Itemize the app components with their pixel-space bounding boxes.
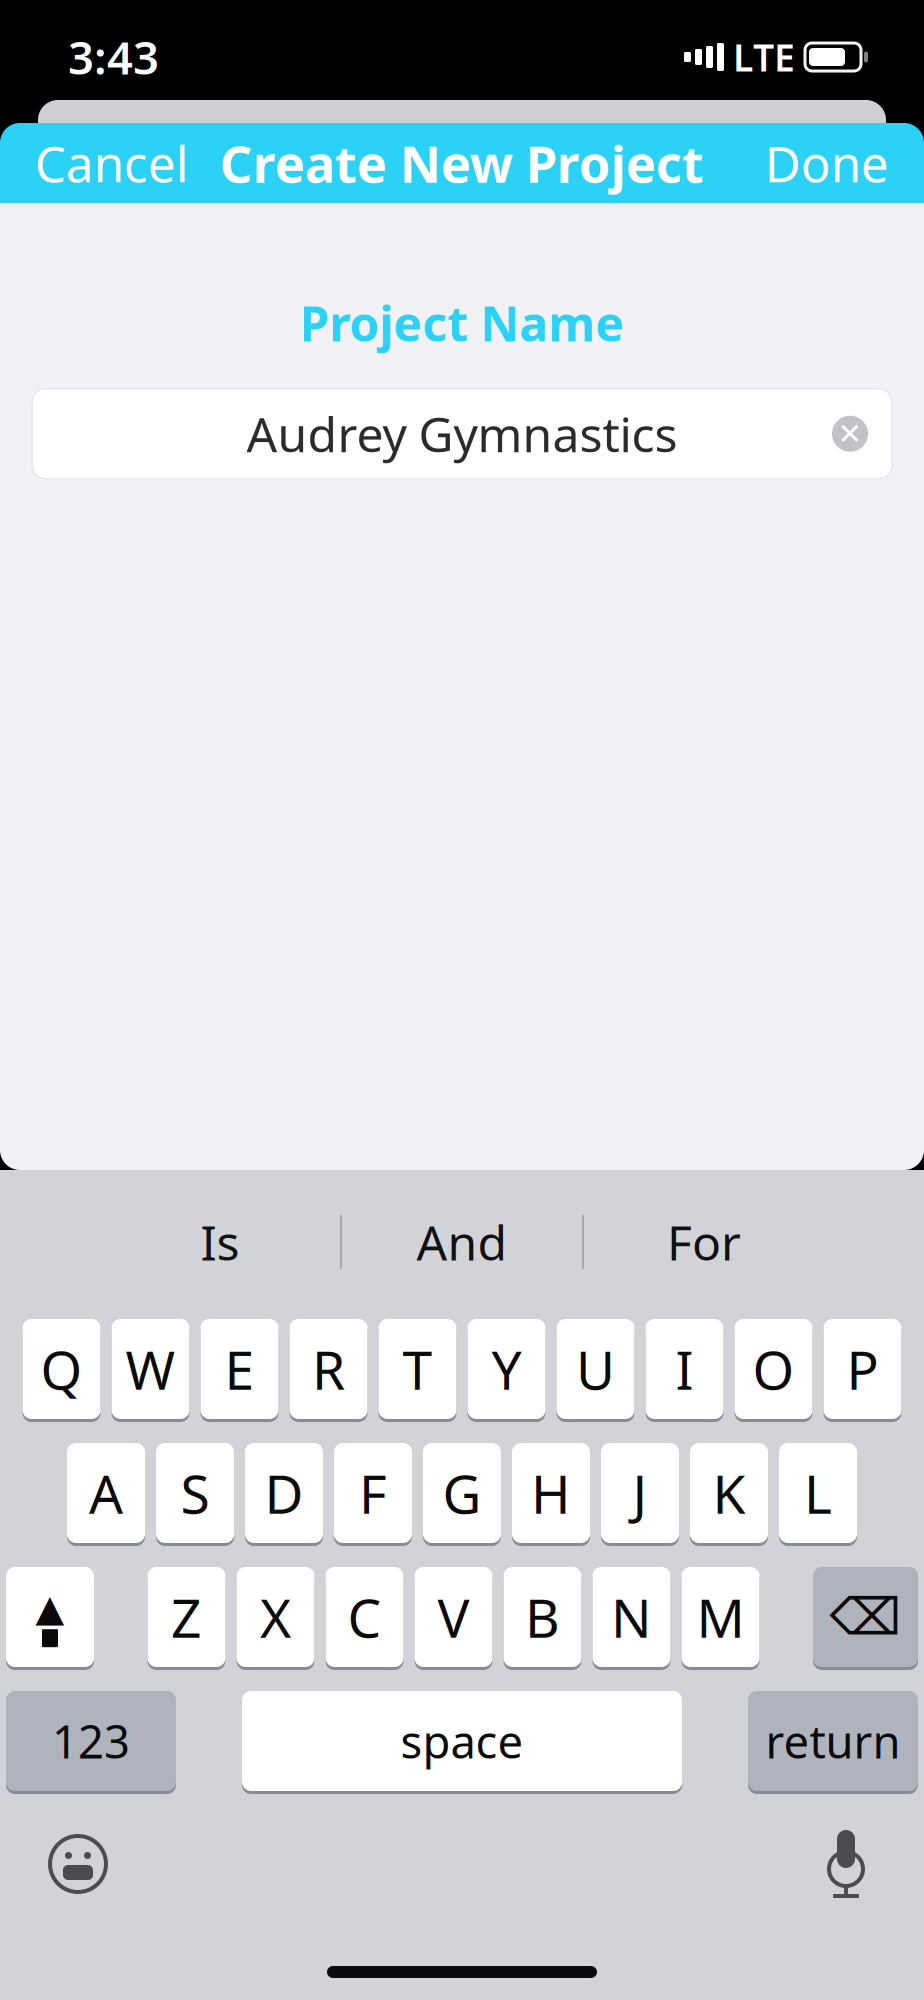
button[interactable]: Z [147, 1564, 225, 1670]
button[interactable]: H [512, 1440, 590, 1546]
button[interactable]: return [748, 1688, 918, 1794]
staticText: Z [171, 1582, 202, 1652]
button[interactable]: T [378, 1316, 456, 1422]
button[interactable]: And [342, 1194, 582, 1290]
button[interactable]: Shift [6, 1564, 94, 1670]
button[interactable]: I [645, 1316, 723, 1422]
button[interactable]: Q [22, 1316, 100, 1422]
staticText: H [531, 1458, 571, 1528]
staticText: K [712, 1458, 745, 1528]
button[interactable]: C [325, 1564, 403, 1670]
staticText: 3:43 [68, 27, 159, 87]
button[interactable]: W [111, 1316, 189, 1422]
staticText: Create New Project [220, 129, 704, 197]
staticText: Cancel [35, 130, 189, 196]
button[interactable]: space [242, 1688, 682, 1794]
staticText: Is [200, 1210, 239, 1274]
button[interactable]: N [592, 1564, 670, 1670]
button[interactable]: F [334, 1440, 412, 1546]
staticText: ✕ [837, 417, 862, 450]
staticText: F [359, 1458, 387, 1528]
staticText: O [752, 1334, 794, 1404]
button[interactable]: O [734, 1316, 812, 1422]
staticText: And [416, 1210, 507, 1274]
staticText: L [804, 1458, 832, 1528]
staticText: B [525, 1582, 560, 1652]
staticText: Done [765, 130, 889, 196]
button[interactable]: U [556, 1316, 634, 1422]
button[interactable]: L [779, 1440, 857, 1546]
staticText: Y [491, 1334, 521, 1404]
staticText: return [765, 1711, 900, 1771]
staticText: V [437, 1582, 469, 1652]
button[interactable]: Done [747, 118, 907, 208]
staticText: T [402, 1334, 432, 1404]
staticText: LTE [733, 32, 795, 82]
staticText: Audrey Gymnastics [246, 402, 677, 466]
button[interactable]: Delete [813, 1564, 918, 1670]
button[interactable]: Dictation [816, 1830, 876, 1898]
button[interactable]: B [503, 1564, 581, 1670]
staticText: For [667, 1210, 741, 1274]
button[interactable]: J [601, 1440, 679, 1546]
button[interactable]: X [236, 1564, 314, 1670]
button[interactable]: M [681, 1564, 759, 1670]
staticText: M [696, 1582, 744, 1652]
staticText: X [260, 1582, 291, 1652]
staticText: N [611, 1582, 652, 1652]
staticText: ⌫ [829, 1588, 901, 1646]
staticText: G [442, 1458, 481, 1528]
staticText: W [125, 1334, 175, 1404]
button[interactable]: Is [100, 1194, 340, 1290]
staticText: 123 [52, 1711, 130, 1771]
staticText: A [89, 1458, 123, 1528]
staticText: U [576, 1334, 615, 1404]
staticText: S [180, 1458, 209, 1528]
button[interactable]: For [584, 1194, 824, 1290]
button[interactable]: Cancel [17, 118, 207, 208]
button[interactable]: Y [467, 1316, 545, 1422]
staticText: E [224, 1334, 254, 1404]
staticText: P [846, 1334, 878, 1404]
button[interactable]: G [423, 1440, 501, 1546]
staticText: ▲ [35, 1587, 64, 1629]
staticText: Project Name [299, 291, 624, 355]
button[interactable]: K [690, 1440, 768, 1546]
button[interactable]: A [67, 1440, 145, 1546]
staticText: Q [40, 1334, 82, 1404]
button[interactable]: D [245, 1440, 323, 1546]
staticText: C [347, 1582, 381, 1652]
button[interactable]: 123 [6, 1688, 176, 1794]
button[interactable]: Clear text [820, 404, 880, 464]
button[interactable]: Emoji keyboard [48, 1834, 108, 1894]
staticText: I [675, 1334, 693, 1404]
button[interactable]: R [289, 1316, 367, 1422]
staticText: R [312, 1334, 345, 1404]
button[interactable]: E [200, 1316, 278, 1422]
button[interactable]: V [414, 1564, 492, 1670]
staticText: space [400, 1711, 523, 1771]
staticText: J [632, 1458, 647, 1528]
button[interactable]: S [156, 1440, 234, 1546]
button[interactable]: P [823, 1316, 901, 1422]
staticText: D [264, 1458, 303, 1528]
